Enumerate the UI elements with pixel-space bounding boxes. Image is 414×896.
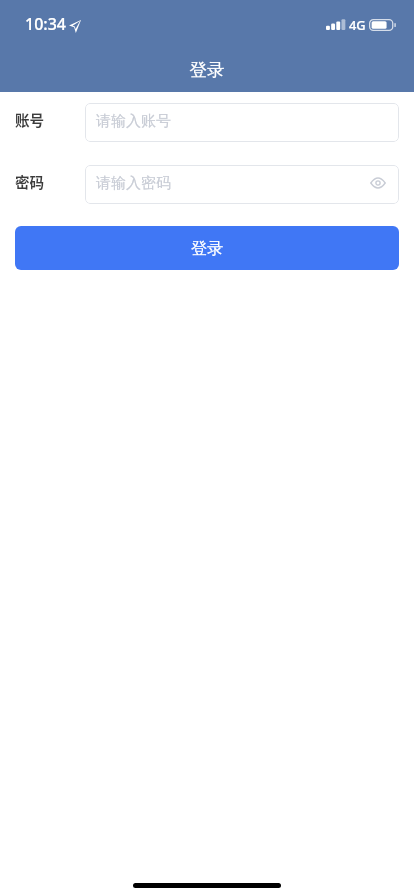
staticText: 请输入账号 [96,112,171,131]
button[interactable]: 请输入密码 [85,165,399,204]
button[interactable]: 登录 [15,226,399,270]
staticText: 密码 [15,171,45,192]
staticText: 登录 [191,238,224,258]
staticText: 请输入密码 [96,174,171,193]
staticText: 登录 [0,59,414,81]
staticText: 账号 [15,109,45,130]
button[interactable]: 请输入账号 [85,103,399,142]
button[interactable]: Show password [368,173,388,193]
staticText: 10:34 [25,13,66,35]
staticText: 4G [349,16,366,33]
